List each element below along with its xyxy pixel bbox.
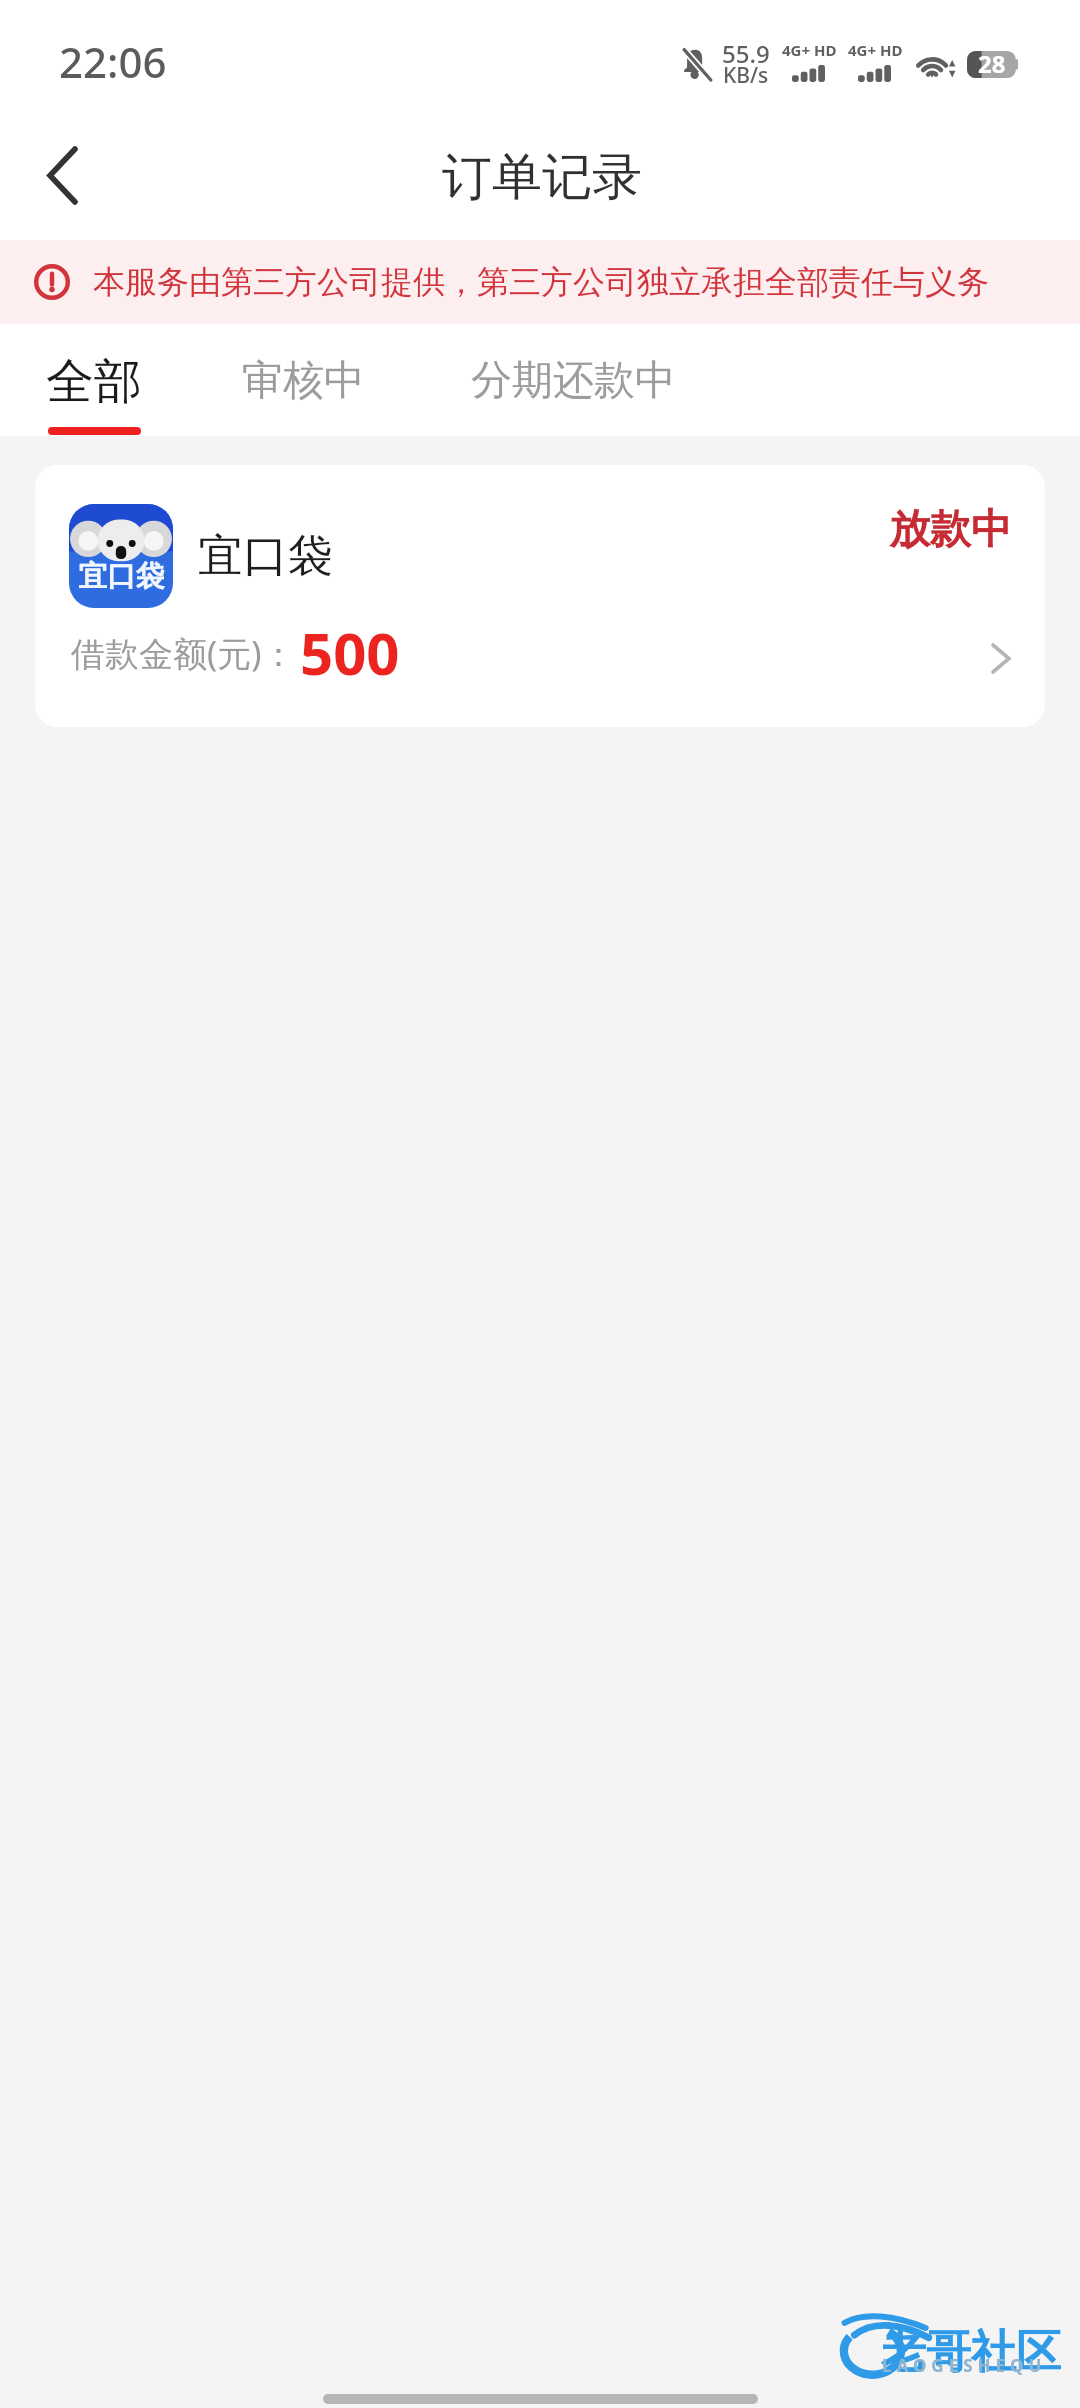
staticText: 55.9 [722, 37, 770, 70]
button[interactable]: 分期还款中 [455, 324, 692, 436]
button[interactable]: 审核中 [226, 324, 381, 436]
staticText: 借款金额(元)： [71, 630, 296, 676]
staticText: 审核中 [242, 355, 365, 407]
button[interactable]: 宜口袋 [35, 465, 1045, 727]
staticText: 28 [978, 47, 1006, 80]
staticText: 本服务由第三方公司提供，第三方公司独立承担全部责任与义务 [93, 262, 989, 302]
staticText: 宜口袋 [198, 528, 333, 585]
staticText: 4G+ HD [848, 40, 903, 60]
staticText: 订单记录 [442, 146, 642, 209]
staticText: 分期还款中 [471, 355, 676, 407]
staticText: 老哥社区 [881, 2324, 1061, 2381]
staticText: 22:06 [59, 33, 167, 90]
button[interactable]: Back [0, 120, 128, 240]
staticText: 宜口袋 [78, 558, 165, 595]
staticText: 500 [300, 613, 400, 692]
staticText: 4G+ HD [782, 40, 837, 60]
staticText: 全部 [46, 352, 142, 412]
staticText: KB/s [723, 61, 769, 90]
staticText: LAOGESHEQU [882, 2354, 1047, 2377]
staticText: 放款中 [889, 504, 1012, 556]
button[interactable]: 全部 [30, 324, 158, 436]
